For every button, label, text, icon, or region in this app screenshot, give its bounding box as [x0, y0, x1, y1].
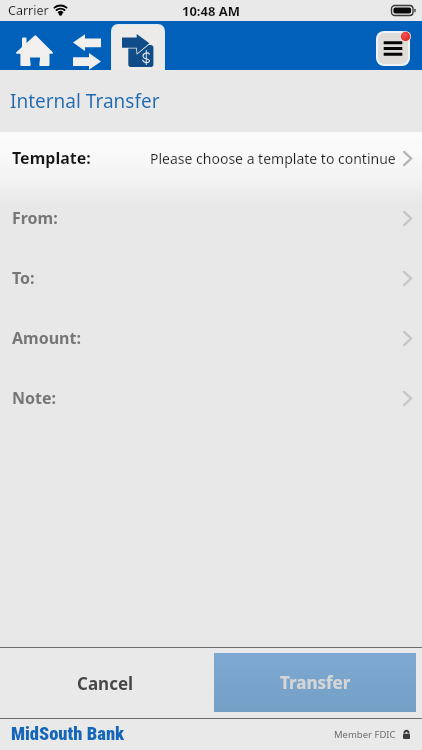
button[interactable]: Home — [0, 21, 56, 70]
button[interactable]: Transfer — [214, 653, 416, 712]
button[interactable]: Template: — [0, 128, 422, 188]
staticText: Transfer — [280, 671, 351, 694]
staticText: Internal Transfer — [10, 88, 160, 114]
button[interactable]: Note: — [0, 368, 422, 428]
button[interactable]: Amount: — [0, 308, 422, 368]
staticText: Carrier — [8, 2, 49, 19]
staticText: Amount: — [12, 327, 81, 349]
button[interactable]: Transfers — [58, 21, 110, 70]
button[interactable]: Internal Transfer — [112, 21, 164, 70]
staticText: Cancel — [77, 672, 134, 695]
staticText: Template: — [12, 147, 91, 169]
button[interactable]: From: — [0, 188, 422, 248]
staticText: To: — [12, 267, 35, 289]
staticText: Note: — [12, 387, 57, 409]
button[interactable]: Menu — [374, 29, 414, 67]
staticText: 10:48 AM — [182, 2, 241, 20]
staticText: Member FDIC — [334, 728, 396, 741]
staticText: From: — [12, 207, 58, 229]
staticText: Please choose a template to continue — [150, 149, 396, 168]
button[interactable]: To: — [0, 248, 422, 308]
button[interactable]: Cancel — [0, 648, 211, 718]
staticText: MidSouth Bank — [11, 723, 125, 745]
